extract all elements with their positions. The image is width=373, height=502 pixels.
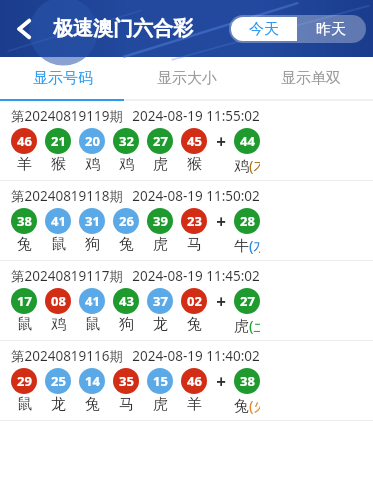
- button[interactable]: Back: [3, 7, 47, 51]
- staticText: 41: [85, 292, 100, 310]
- staticText: 鼠: [51, 235, 66, 254]
- staticText: 兔: [17, 235, 32, 254]
- staticText: 狗: [119, 315, 134, 334]
- staticText: 龙: [51, 395, 66, 414]
- staticText: 27: [153, 132, 168, 150]
- staticText: 鸡: [119, 155, 134, 174]
- button[interactable]: 第20240819117期: [0, 261, 373, 340]
- staticText: 猴: [51, 155, 66, 174]
- staticText: 32: [119, 132, 134, 150]
- staticText: 23: [187, 212, 202, 230]
- staticText: 兔(火): [234, 395, 260, 415]
- button[interactable]: 第20240819116期: [0, 341, 373, 420]
- staticText: 28: [240, 212, 255, 230]
- staticText: 第20240819116期: [11, 347, 123, 365]
- staticText: 14: [85, 372, 100, 390]
- staticText: 兔: [85, 395, 100, 414]
- staticText: 35: [119, 372, 134, 390]
- staticText: 虎: [153, 235, 168, 254]
- staticText: 44: [240, 132, 255, 150]
- staticText: 牛(水): [234, 235, 260, 255]
- staticText: 昨天: [316, 20, 346, 39]
- staticText: 21: [51, 132, 66, 150]
- staticText: 2024-08-19 11:50:02: [132, 187, 260, 205]
- staticText: 今天: [249, 20, 279, 39]
- staticText: 鼠: [17, 315, 32, 334]
- staticText: 鸡: [85, 155, 100, 174]
- staticText: 15: [153, 372, 168, 390]
- staticText: 龙: [153, 315, 168, 334]
- staticText: 41: [51, 212, 66, 230]
- staticText: +: [216, 370, 226, 393]
- staticText: 2024-08-19 11:55:02: [132, 107, 260, 125]
- staticText: 29: [17, 372, 32, 390]
- staticText: 兔: [187, 315, 202, 334]
- staticText: 46: [17, 132, 32, 150]
- button[interactable]: 昨天: [297, 17, 364, 41]
- staticText: 08: [51, 292, 66, 310]
- staticText: 38: [17, 212, 32, 230]
- staticText: +: [216, 290, 226, 313]
- staticText: 鼠: [85, 315, 100, 334]
- button[interactable]: 显示大小: [125, 57, 249, 99]
- staticText: 虎(土): [234, 315, 260, 335]
- staticText: 20: [85, 132, 100, 150]
- staticText: 2024-08-19 11:40:02: [132, 347, 260, 365]
- staticText: 羊: [17, 155, 32, 174]
- staticText: 38: [240, 372, 255, 390]
- staticText: +: [216, 130, 226, 153]
- staticText: 46: [187, 372, 202, 390]
- staticText: 第20240819117期: [11, 267, 123, 285]
- staticText: +: [216, 210, 226, 233]
- staticText: 17: [17, 292, 32, 310]
- staticText: 鸡(木): [234, 155, 260, 175]
- staticText: 43: [119, 292, 134, 310]
- staticText: 马: [187, 235, 202, 254]
- button[interactable]: 显示单双: [249, 57, 373, 99]
- staticText: 极速澳门六合彩: [53, 16, 193, 41]
- staticText: 虎: [153, 155, 168, 174]
- staticText: 兔: [119, 235, 134, 254]
- staticText: 第20240819119期: [11, 107, 123, 125]
- staticText: 显示号码: [33, 69, 93, 88]
- staticText: 39: [153, 212, 168, 230]
- staticText: 虎: [153, 395, 168, 414]
- button[interactable]: 今天: [231, 17, 297, 41]
- staticText: 鼠: [17, 395, 32, 414]
- staticText: 猴: [187, 155, 202, 174]
- staticText: 25: [51, 372, 66, 390]
- staticText: 37: [153, 292, 168, 310]
- staticText: 31: [85, 212, 100, 230]
- staticText: 马: [119, 395, 134, 414]
- staticText: 鸡: [51, 315, 66, 334]
- staticText: 45: [187, 132, 202, 150]
- button[interactable]: 第20240819119期: [0, 101, 373, 180]
- button[interactable]: 显示号码: [0, 57, 125, 99]
- staticText: 2024-08-19 11:45:02: [132, 267, 260, 285]
- button[interactable]: 第20240819118期: [0, 181, 373, 260]
- staticText: 羊: [187, 395, 202, 414]
- staticText: 显示单双: [281, 69, 341, 88]
- staticText: 显示大小: [157, 69, 217, 88]
- staticText: 狗: [85, 235, 100, 254]
- staticText: 第20240819118期: [11, 187, 123, 205]
- staticText: 26: [119, 212, 134, 230]
- staticText: 02: [187, 292, 202, 310]
- staticText: 27: [240, 292, 255, 310]
